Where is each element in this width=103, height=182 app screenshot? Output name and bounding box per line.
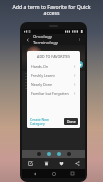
staticText: Freshly Learnt: [31, 73, 73, 78]
button[interactable]: Page: [47, 152, 51, 156]
button[interactable]: Page: [67, 152, 71, 156]
button[interactable]: Share: [70, 158, 84, 169]
button[interactable]: Freshly Learnt: [27, 71, 80, 80]
button[interactable]: Edit: [23, 158, 37, 169]
staticText: Hands-On: [31, 64, 73, 69]
staticText: Add a term to Favorite for Quick access: [5, 3, 98, 17]
button[interactable]: Back: [29, 169, 41, 178]
staticText: ADD TO FAVORITES: [27, 54, 80, 59]
staticText: Familiar but Forgotten: [31, 91, 73, 96]
staticText: Done: [67, 119, 76, 124]
button[interactable]: Done: [64, 118, 78, 125]
button[interactable]: Familiar but Forgotten: [27, 89, 80, 98]
staticText: Create New Category: [30, 117, 64, 126]
button[interactable]: Create New Category: [30, 117, 64, 126]
staticText: Nearly Done: [31, 82, 73, 87]
button[interactable]: Hands-On: [27, 62, 80, 71]
staticText: Oncology Terminology: [33, 34, 76, 45]
button[interactable]: Favorite: [54, 158, 68, 169]
button[interactable]: Delete: [39, 158, 53, 169]
button[interactable]: Nearly Done: [27, 80, 80, 89]
button[interactable]: Page: [57, 152, 61, 156]
button[interactable]: Back: [24, 36, 32, 44]
button[interactable]: Home: [48, 169, 60, 178]
button[interactable]: More options: [76, 36, 83, 43]
button[interactable]: Recents: [66, 169, 78, 178]
button[interactable]: Favorite: [76, 61, 83, 68]
button[interactable]: Page: [37, 152, 41, 156]
